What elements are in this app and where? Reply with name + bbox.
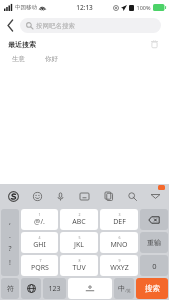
button[interactable]: Emoji (27, 184, 48, 208)
button[interactable]: 6 (100, 232, 138, 253)
button[interactable] (21, 278, 41, 299)
button[interactable]: Search (122, 184, 143, 208)
staticText: 1 (38, 212, 41, 217)
button[interactable]: 符 (1, 278, 19, 299)
staticText: 9 (118, 258, 121, 263)
staticText: 7 (39, 258, 42, 263)
staticText: WXYZ (110, 263, 129, 273)
button[interactable]: 2 (60, 209, 98, 230)
staticText: 生意 (12, 55, 25, 63)
button[interactable]: 123 (43, 278, 66, 299)
staticText: 3 (118, 212, 121, 217)
button[interactable]: 8 (60, 255, 98, 276)
button[interactable]: Sogou input (3, 184, 24, 208)
staticText: /英 (125, 288, 131, 293)
staticText: 2 (78, 212, 81, 217)
button[interactable]: 3 (100, 209, 138, 230)
staticText: 搜索 (145, 284, 160, 293)
button[interactable]: Clipboard (98, 184, 119, 208)
button[interactable]: 5 (60, 232, 98, 253)
staticText: 中国移动 (15, 4, 37, 11)
button[interactable]: 1 (21, 209, 58, 230)
staticText: . (9, 231, 11, 241)
button[interactable]: 9 (100, 255, 138, 276)
staticText: 你好 (45, 55, 58, 63)
button[interactable]: 4 (21, 232, 58, 253)
button[interactable] (140, 209, 168, 230)
staticText: ! (9, 258, 11, 268)
button[interactable]: 生意 (10, 55, 27, 63)
staticText: 100% (136, 4, 151, 11)
staticText: 重输 (147, 238, 161, 247)
staticText: JKL (74, 240, 84, 250)
button[interactable]: 中 (114, 278, 134, 299)
staticText: ABC (72, 217, 86, 227)
button[interactable]: 你好 (43, 55, 60, 63)
staticText: 4 (38, 235, 41, 240)
staticText: MNO (110, 240, 128, 250)
staticText: 符 (7, 284, 14, 293)
button[interactable] (68, 278, 112, 299)
button[interactable]: 按网吧名搜索 (20, 18, 161, 33)
staticText: ? (8, 244, 12, 254)
button[interactable]: 7 (21, 255, 58, 276)
button[interactable]: , (1, 209, 19, 276)
staticText: , (9, 217, 11, 227)
staticText: 123 (48, 284, 61, 294)
button[interactable]: Voice input (50, 184, 71, 208)
staticText: DEF (113, 217, 126, 227)
button[interactable]: Clear history (147, 37, 161, 51)
staticText: 中 (118, 284, 125, 293)
staticText: 12:13 (76, 3, 93, 12)
staticText: TUV (72, 263, 86, 273)
button[interactable]: Hide keyboard (145, 184, 166, 208)
staticText: 0 (152, 261, 157, 271)
staticText: @/. (34, 217, 45, 227)
staticText: GHI (33, 240, 46, 250)
button[interactable]: 重输 (140, 232, 168, 253)
staticText: 按网吧名搜索 (36, 22, 75, 30)
staticText: 5 (78, 235, 81, 240)
staticText: 最近搜索 (8, 40, 36, 49)
staticText: 8 (78, 258, 81, 263)
staticText: 6 (118, 235, 121, 240)
button[interactable]: 搜索 (136, 278, 168, 299)
staticText: PQRS (31, 263, 49, 273)
button[interactable]: Back (0, 14, 20, 36)
button[interactable]: Keyboard layout (74, 184, 95, 208)
button[interactable]: 0 (140, 255, 168, 276)
